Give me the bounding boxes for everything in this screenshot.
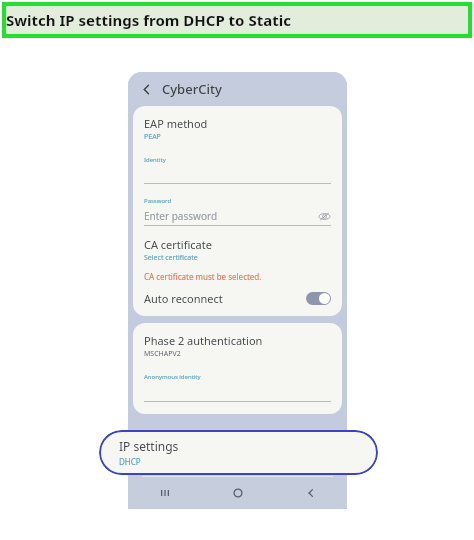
button[interactable]: Show password bbox=[317, 209, 331, 223]
staticText: Identity bbox=[144, 156, 166, 164]
staticText: MSCHAPV2 bbox=[144, 349, 181, 359]
button[interactable]: Phase 2 authentication bbox=[144, 333, 331, 359]
staticText: DHCP bbox=[119, 456, 141, 467]
button[interactable]: Password bbox=[144, 197, 331, 226]
staticText: IP settings bbox=[119, 438, 179, 454]
staticText: CyberCity bbox=[162, 80, 222, 98]
button[interactable]: Back bbox=[137, 80, 155, 98]
staticText: Password bbox=[144, 197, 172, 205]
button[interactable]: Home bbox=[201, 487, 274, 499]
staticText: CA certificate bbox=[144, 237, 212, 252]
staticText: Auto reconnect bbox=[144, 291, 306, 306]
staticText: EAP method bbox=[144, 116, 208, 131]
staticText: Select certificate bbox=[144, 253, 198, 263]
staticText: PEAP bbox=[144, 132, 161, 142]
button[interactable]: Anonymous identity bbox=[144, 373, 331, 402]
button[interactable]: CA certificate bbox=[144, 237, 331, 263]
button[interactable]: Auto reconnect bbox=[144, 291, 331, 306]
button[interactable]: Recents bbox=[128, 487, 201, 499]
button[interactable]: EAP method bbox=[144, 116, 331, 142]
staticText: CA certificate must be selected. bbox=[144, 271, 262, 282]
button[interactable]: Back bbox=[274, 487, 347, 499]
staticText: Enter password bbox=[144, 209, 317, 223]
staticText: Switch IP settings from DHCP to Static bbox=[6, 10, 468, 30]
staticText: Anonymous identity bbox=[144, 373, 201, 381]
button[interactable]: Identity bbox=[144, 156, 331, 184]
button[interactable]: IP settings bbox=[99, 430, 378, 475]
staticText: Phase 2 authentication bbox=[144, 333, 263, 348]
